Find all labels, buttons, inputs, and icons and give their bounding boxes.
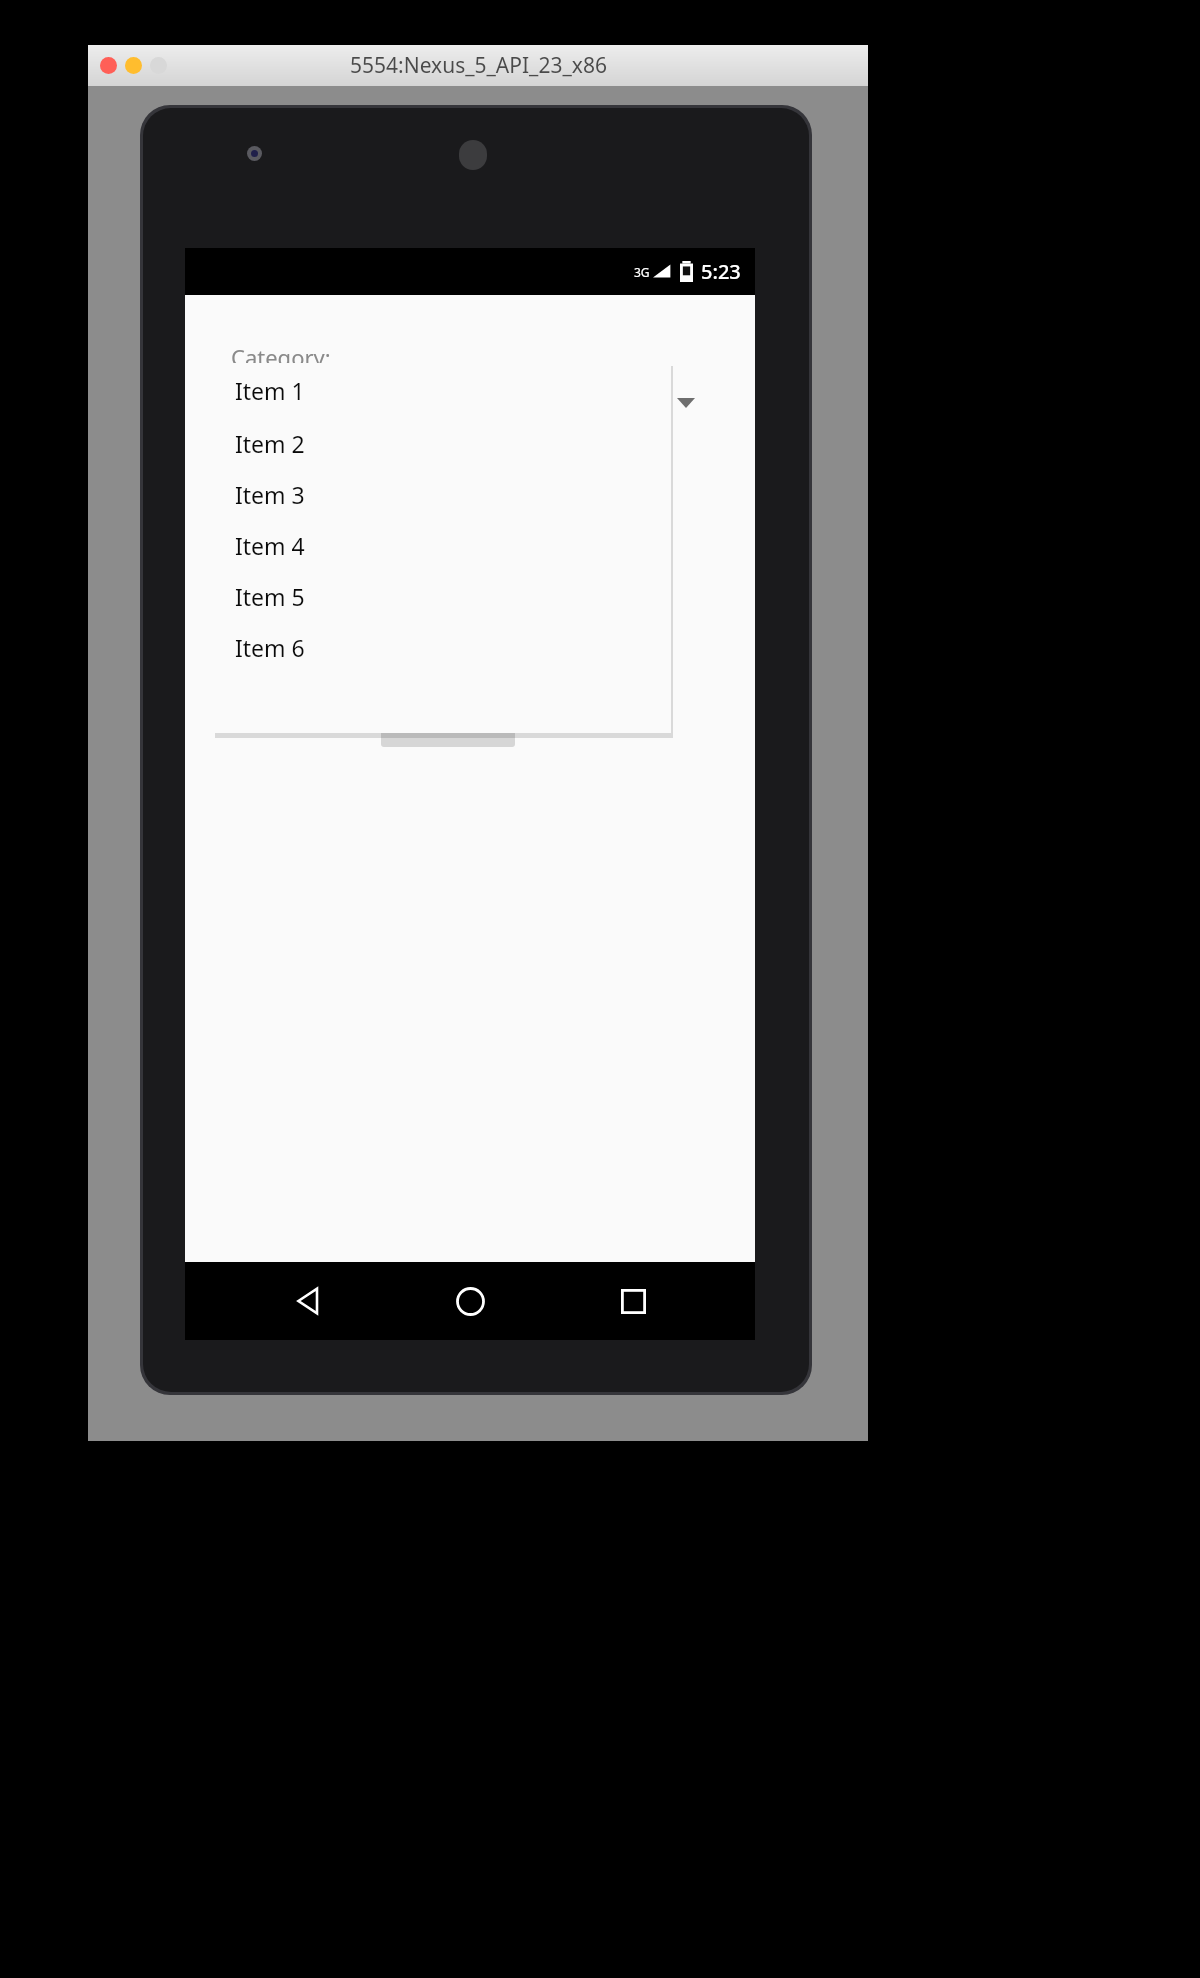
button[interactable]: Item 3 <box>213 469 671 520</box>
button[interactable]: Recent apps <box>593 1262 673 1340</box>
button[interactable]: Item 1 <box>213 363 671 418</box>
button[interactable]: Open category dropdown <box>663 387 709 419</box>
button[interactable]: Window control <box>100 57 117 74</box>
staticText: Item 3 <box>235 479 305 510</box>
button[interactable]: Window control <box>125 57 142 74</box>
button[interactable]: Home <box>430 1262 510 1340</box>
button[interactable]: Item 4 <box>213 520 671 571</box>
staticText: 5554:Nexus_5_API_23_x86 <box>350 51 607 80</box>
staticText: Item 4 <box>235 530 305 561</box>
staticText: Item 6 <box>235 632 305 663</box>
button[interactable]: Item 5 <box>213 571 671 622</box>
button[interactable]: NEXT <box>381 685 515 747</box>
staticText: Category: <box>231 342 331 372</box>
button[interactable]: Back <box>268 1262 348 1340</box>
staticText: Item 5 <box>235 581 305 612</box>
staticText: 3G <box>634 264 650 280</box>
button[interactable]: Item 2 <box>213 418 671 469</box>
button[interactable]: Item 6 <box>213 622 671 673</box>
staticText: Item 2 <box>235 428 305 459</box>
staticText: Item 1 <box>235 375 305 406</box>
staticText: 5:23 <box>701 258 741 285</box>
button[interactable]: Window control <box>150 57 167 74</box>
